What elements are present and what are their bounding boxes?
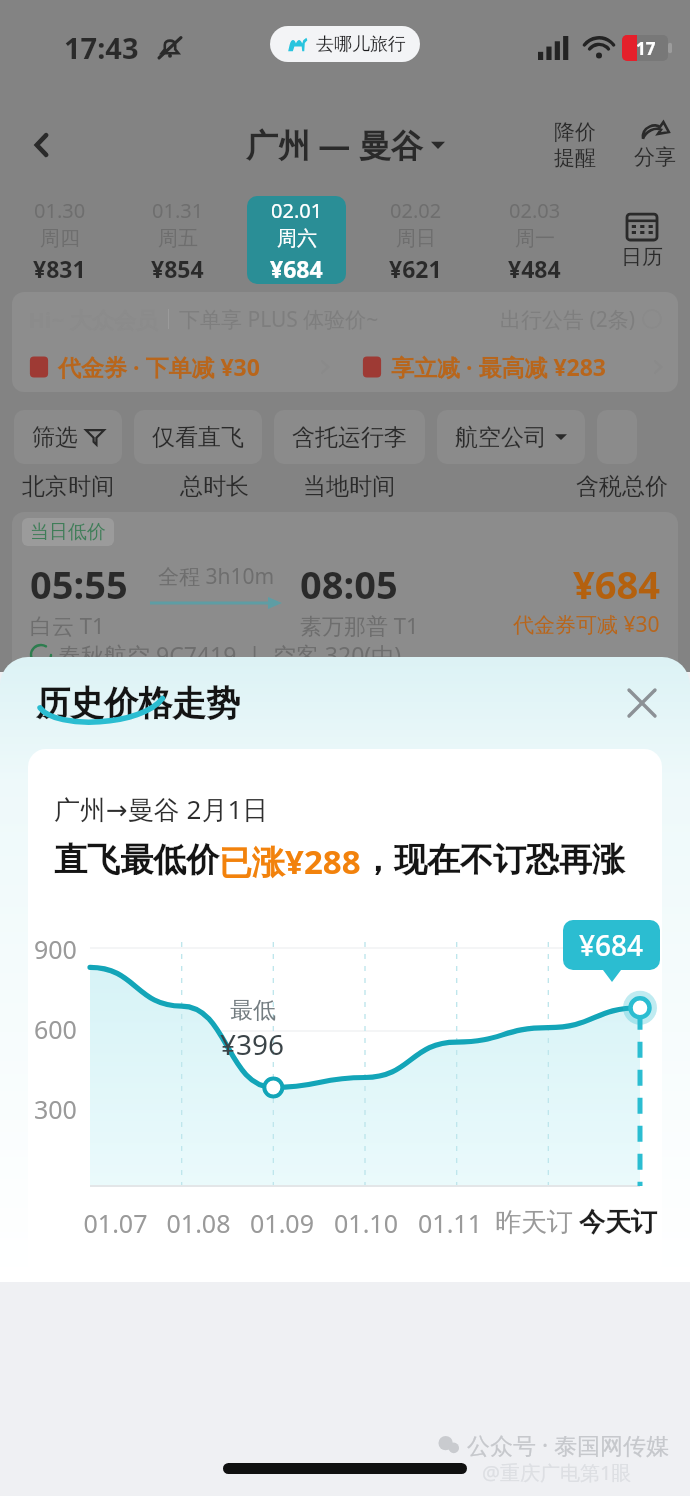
staticText: 含托运行李 — [292, 423, 407, 452]
staticText: 600 — [34, 1012, 77, 1046]
button[interactable]: 当日低价 — [12, 512, 678, 672]
staticText: 出行公告 (2条) — [500, 305, 636, 334]
staticText: 昨天订 — [492, 1206, 576, 1239]
button[interactable]: 享立减 · 最高减 ¥283 — [349, 351, 674, 382]
button[interactable]: 航空公司 — [437, 410, 585, 464]
staticText: 已涨¥288 — [219, 839, 361, 884]
staticText: 周五 — [158, 226, 198, 251]
button[interactable]: 分享 — [634, 120, 676, 170]
staticText: 历史价格走势 — [36, 682, 240, 725]
staticText: ¥831 — [33, 253, 86, 284]
button[interactable]: 含托运行李 — [274, 410, 425, 464]
staticText: 01.31 — [152, 197, 204, 224]
button[interactable]: 仅看直飞 — [134, 410, 262, 464]
staticText: 02.01 — [271, 197, 323, 224]
staticText: 17:43 — [64, 28, 139, 67]
staticText: ，现在不订恐再涨 — [361, 839, 625, 881]
staticText: 日历 — [621, 244, 663, 270]
staticText: 01.09 — [240, 1206, 324, 1240]
staticText: ¥684 — [579, 926, 644, 964]
button[interactable]: Back — [16, 119, 68, 171]
button[interactable]: 筛选 — [14, 410, 122, 464]
staticText: 代金券可减 ¥30 — [513, 610, 660, 639]
staticText: 今天订 — [576, 1206, 660, 1239]
staticText: ¥684 — [270, 253, 323, 284]
staticText: 北京时间 — [22, 472, 114, 501]
staticText: 白云 T1 — [30, 610, 105, 640]
staticText: 02.03 — [509, 197, 561, 224]
staticText: 02.02 — [390, 197, 442, 224]
button[interactable]: Close — [616, 677, 668, 729]
button[interactable]: 02.03 — [485, 196, 584, 284]
staticText: ¥396 — [220, 1025, 285, 1063]
staticText: 全程 3h10m — [158, 562, 275, 591]
staticText: 降价 — [554, 119, 596, 145]
staticText: ¥854 — [151, 253, 204, 284]
staticText: 当日低价 — [30, 520, 106, 544]
button[interactable]: 日历 — [594, 190, 690, 290]
staticText: 17 — [636, 37, 656, 60]
staticText: 享立减 · 最高减 ¥283 — [391, 351, 607, 382]
staticText: 去哪儿旅行 — [316, 33, 406, 56]
button[interactable]: 02.02 — [366, 196, 465, 284]
staticText: 01.10 — [324, 1206, 408, 1240]
staticText: 05:55 — [30, 558, 128, 610]
button[interactable]: 01.30 — [10, 196, 108, 284]
staticText: 01.30 — [34, 197, 86, 224]
staticText: 春秋航空 9C7419 | 空客 320(中) — [58, 639, 402, 670]
staticText: 广州 — 曼谷 — [246, 123, 423, 167]
staticText: 提醒 — [554, 145, 596, 171]
staticText: 代金券 · 下单减 ¥30 — [58, 351, 260, 382]
button[interactable]: 01.31 — [128, 196, 227, 284]
button[interactable]: 代金券 · 下单减 ¥30 — [16, 351, 341, 382]
staticText: 周日 — [396, 226, 436, 251]
staticText: 分享 — [634, 144, 676, 170]
button[interactable]: 02.01 — [247, 196, 346, 284]
staticText: @重庆广电第1眼 — [482, 1459, 632, 1486]
button[interactable]: 广州 — 曼谷 — [246, 123, 445, 167]
staticText: 300 — [34, 1092, 77, 1126]
staticText: 最低 — [230, 996, 276, 1025]
staticText: ¥621 — [389, 253, 442, 284]
staticText: 素万那普 T1 — [300, 610, 419, 640]
staticText: 01.07 — [74, 1206, 157, 1240]
staticText: 筛选 — [32, 423, 78, 452]
staticText: 周四 — [40, 226, 80, 251]
staticText: 航空公司 — [455, 423, 547, 452]
staticText: 周一 — [515, 226, 555, 251]
staticText: 含税总价 — [576, 472, 668, 501]
staticText: 下单享 PLUS 体验价~ — [179, 305, 379, 334]
staticText: 当地时间 — [303, 472, 395, 501]
staticText: 周六 — [277, 226, 317, 251]
button[interactable]: 降价 — [554, 119, 596, 171]
staticText: 900 — [34, 932, 77, 966]
staticText: 01.08 — [157, 1206, 240, 1240]
staticText: 08:05 — [300, 558, 398, 610]
staticText: 仅看直飞 — [152, 423, 244, 452]
staticText: 公众号 · 泰国网传媒 — [467, 1429, 670, 1460]
staticText: 01.11 — [408, 1206, 492, 1240]
staticText: 广州→曼谷 2月1日 — [54, 791, 269, 827]
staticText: ¥684 — [573, 558, 660, 610]
staticText: ¥484 — [508, 253, 561, 284]
staticText: 直飞最低价 — [54, 839, 219, 881]
staticText: 总时长 — [180, 472, 249, 501]
